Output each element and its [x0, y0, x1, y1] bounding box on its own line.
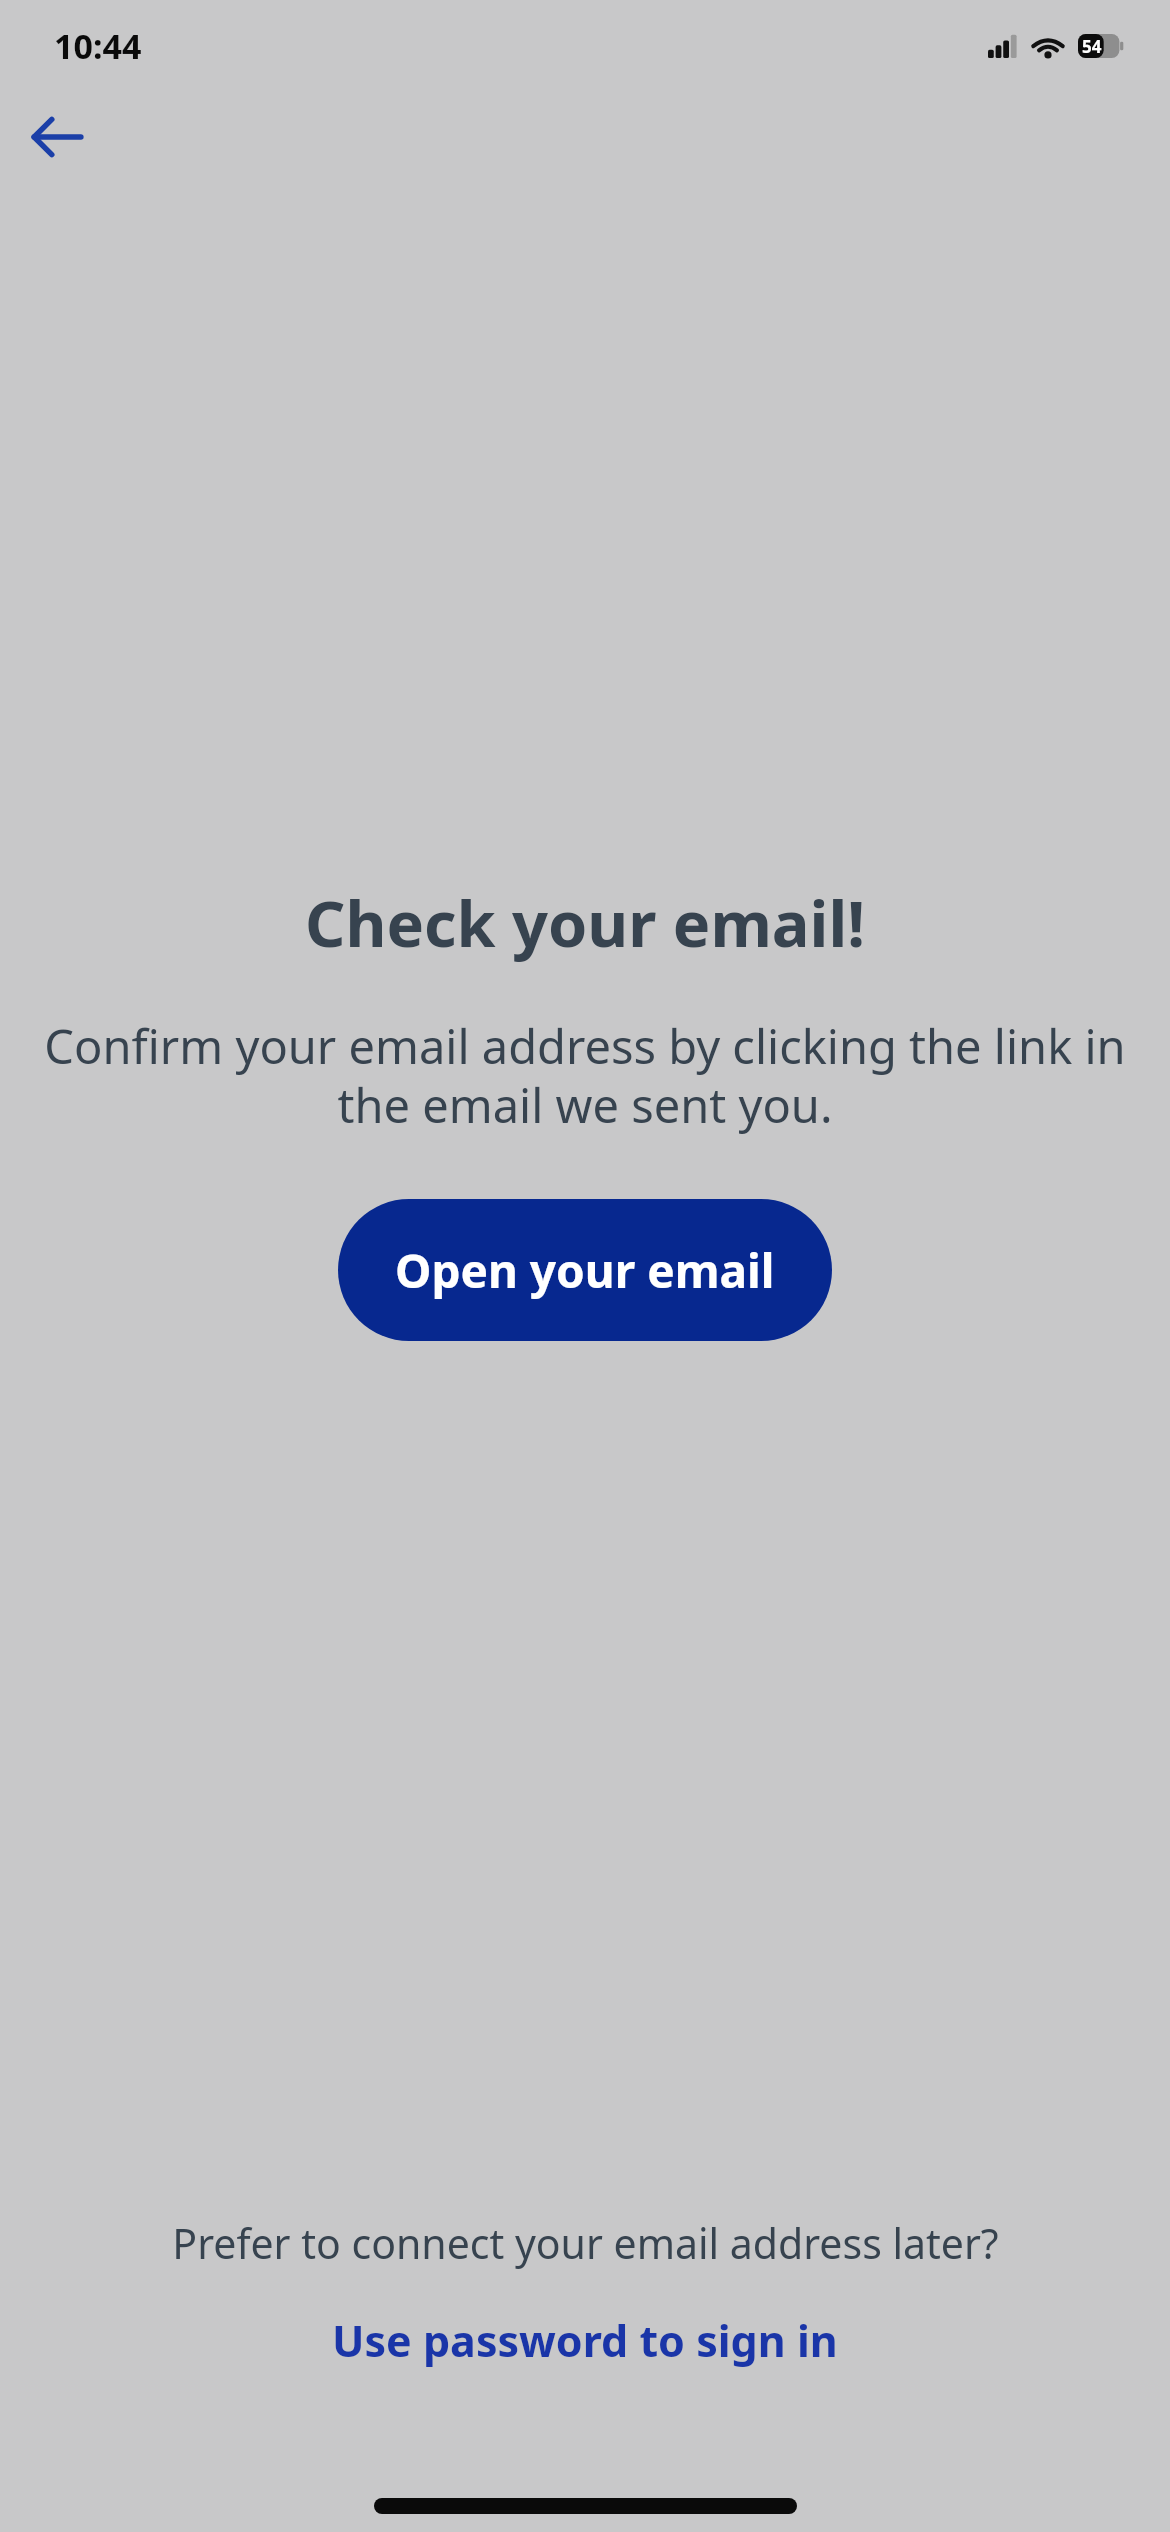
- button[interactable]: Open your email: [338, 1199, 832, 1341]
- staticText: Prefer to connect your email address lat…: [172, 2215, 999, 2271]
- button[interactable]: Use password to sign in: [308, 2301, 862, 2380]
- staticText: Confirm your email address by clicking t…: [30, 1014, 1140, 1137]
- button[interactable]: Back: [14, 94, 100, 180]
- staticText: 54: [1082, 35, 1102, 58]
- staticText: Check your email!: [305, 880, 865, 966]
- staticText: Use password to sign in: [332, 2311, 838, 2370]
- staticText: Open your email: [395, 1239, 775, 1302]
- staticText: 10:44: [54, 23, 142, 69]
